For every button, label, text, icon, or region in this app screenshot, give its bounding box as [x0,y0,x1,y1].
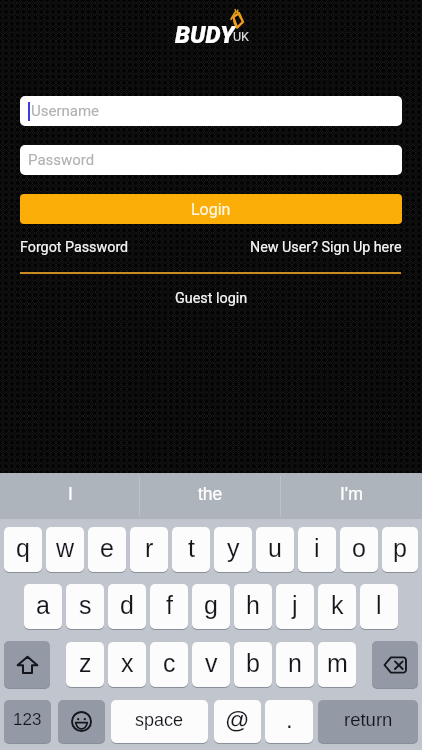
button[interactable]: r [130,527,168,573]
button[interactable]: d [108,584,146,630]
button[interactable]: j [276,584,314,630]
staticText: s [79,591,92,619]
staticText: @ [225,706,250,733]
staticText: e [100,534,114,562]
staticText: u [268,534,282,562]
button[interactable]: c [150,642,188,688]
button[interactable]: n [276,642,314,688]
staticText: the [198,484,223,504]
button[interactable]: v [192,642,230,688]
button[interactable]: space [111,700,208,744]
button[interactable]: Username [20,96,402,126]
button[interactable]: Forgot Password [20,239,129,256]
button[interactable]: g [192,584,230,630]
button[interactable]: x [108,642,146,688]
staticText: v [205,649,218,677]
staticText: space [135,710,184,730]
button[interactable]: I [0,473,140,519]
button[interactable]: a [24,584,62,630]
staticText: q [16,534,30,562]
button[interactable]: l [360,584,398,630]
button[interactable]: New User? Sign Up here [250,239,402,256]
button[interactable]: s [66,584,104,630]
button[interactable]: y [214,527,252,573]
staticText: k [331,591,344,619]
staticText: n [288,649,302,677]
other: Backspace [383,656,407,674]
button[interactable]: k [318,584,356,630]
staticText: Password [28,151,95,169]
button[interactable]: the [140,473,281,519]
staticText: t [188,534,195,562]
staticText: g [204,591,218,619]
staticText: i [314,534,320,562]
button[interactable]: h [234,584,272,630]
staticText: I'm [340,484,363,504]
staticText: y [227,534,240,562]
other: Shift [17,656,38,674]
button[interactable]: Emoji [58,700,105,744]
staticText: m [327,649,348,677]
button[interactable]: w [46,527,84,573]
staticText: o [352,534,366,562]
button[interactable]: i [298,527,336,573]
staticText: f [166,591,173,619]
button[interactable]: q [4,527,42,573]
staticText: r [145,534,154,562]
button[interactable]: Login [20,194,402,224]
staticText: d [120,591,134,619]
button[interactable]: t [172,527,210,573]
staticText: I [68,484,73,504]
button[interactable]: u [256,527,294,573]
staticText: Login [191,200,231,219]
button[interactable]: m [318,642,356,688]
staticText: j [292,591,298,619]
staticText: 123 [13,710,42,729]
staticText: b [246,649,260,677]
staticText: . [286,706,293,733]
staticText: return [344,709,393,730]
staticText: w [56,534,75,562]
staticText: UK [233,29,249,44]
button[interactable]: . [265,700,313,744]
staticText: a [36,591,50,619]
button[interactable]: Guest login [175,290,248,307]
staticText: z [79,649,92,677]
button[interactable]: Shift [4,641,50,689]
button[interactable]: I'm [281,473,422,519]
staticText: l [376,591,382,619]
button[interactable]: Password [20,145,402,175]
staticText: BUDY [175,21,235,49]
other: Emoji [71,711,92,732]
button[interactable]: o [340,527,378,573]
button[interactable]: z [66,642,104,688]
staticText: p [393,534,407,562]
button[interactable]: e [88,527,126,573]
staticText: h [246,591,260,619]
button[interactable]: return [318,700,418,744]
button[interactable]: @ [214,700,261,744]
staticText: Username [31,102,100,120]
button[interactable]: p [382,527,418,573]
button[interactable]: b [234,642,272,688]
staticText: c [163,649,176,677]
staticText: x [121,649,134,677]
button[interactable]: Backspace [372,641,418,689]
button[interactable]: 123 [4,700,51,744]
button[interactable]: f [150,584,188,630]
